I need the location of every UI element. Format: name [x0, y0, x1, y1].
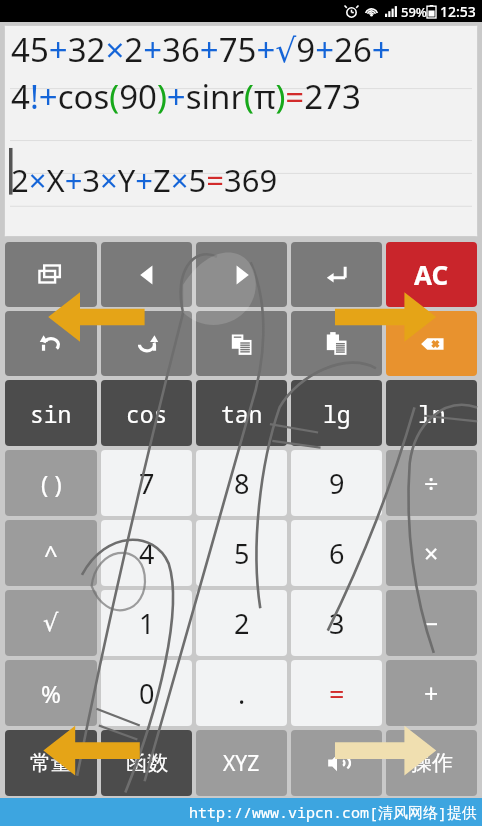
staticText: 常量 — [30, 750, 72, 776]
staticText: 4 — [139, 535, 155, 572]
staticText: AC — [414, 257, 449, 292]
button[interactable]: lg — [291, 380, 382, 446]
button[interactable]: 6 — [291, 520, 382, 586]
button[interactable]: + — [386, 660, 477, 726]
staticText: 4!+cos(90)+sinr(π)=273 — [11, 74, 361, 119]
staticText: 操作 — [411, 750, 453, 776]
staticText: ( ) — [41, 467, 62, 500]
staticText: 9 — [329, 465, 345, 502]
staticText: ÷ — [424, 466, 439, 500]
staticText: tan — [221, 398, 263, 429]
button[interactable]: 2 — [196, 590, 287, 656]
staticText: 7 — [139, 465, 155, 502]
button[interactable]: Sound — [291, 730, 382, 796]
staticText: − — [424, 606, 439, 640]
button[interactable]: 45+32×2+36+75+√9+26+ — [4, 25, 478, 237]
staticText: 6 — [329, 535, 345, 572]
button[interactable]: ^ — [5, 520, 97, 586]
staticText: lg — [323, 398, 351, 429]
staticText: 1 — [139, 605, 155, 642]
button[interactable]: ÷ — [386, 450, 477, 516]
staticText: 12:53 — [440, 2, 476, 21]
button[interactable]: ln — [386, 380, 477, 446]
button[interactable]: = — [291, 660, 382, 726]
button[interactable]: √ — [5, 590, 97, 656]
button[interactable]: Paste — [291, 311, 382, 376]
button[interactable]: 7 — [101, 450, 192, 516]
button[interactable]: 常量 — [5, 730, 97, 796]
staticText: × — [424, 536, 439, 570]
staticText: http://www.vipcn.com[清风网络]提供 — [189, 802, 478, 822]
button[interactable]: Windows — [5, 242, 97, 307]
button[interactable]: % — [5, 660, 97, 726]
button[interactable]: 1 — [101, 590, 192, 656]
staticText: 函数 — [126, 750, 168, 776]
button[interactable]: Move left — [101, 242, 192, 307]
button[interactable]: Undo — [5, 311, 97, 376]
button[interactable]: sin — [5, 380, 97, 446]
button[interactable]: XYZ — [196, 730, 287, 796]
button[interactable]: tan — [196, 380, 287, 446]
staticText: 3 — [329, 605, 345, 642]
button[interactable]: Backspace — [386, 311, 477, 376]
button[interactable]: 0 — [101, 660, 192, 726]
staticText: ln — [418, 398, 446, 429]
staticText: 45+32×2+36+75+√9+26+ — [11, 27, 391, 72]
button[interactable]: 3 — [291, 590, 382, 656]
button[interactable]: ( ) — [5, 450, 97, 516]
staticText: % — [41, 677, 61, 710]
staticText: 0 — [139, 675, 155, 712]
button[interactable]: Copy — [196, 311, 287, 376]
button[interactable]: 函数 — [101, 730, 192, 796]
button[interactable]: Redo — [101, 311, 192, 376]
button[interactable]: × — [386, 520, 477, 586]
staticText: 2×X+3×Y+Z×5=369 — [11, 159, 278, 201]
staticText: . — [238, 675, 246, 712]
button[interactable]: 8 — [196, 450, 287, 516]
button[interactable]: Move right — [196, 242, 287, 307]
staticText: XYZ — [223, 749, 260, 778]
button[interactable]: 4 — [101, 520, 192, 586]
staticText: = — [329, 675, 345, 712]
staticText: √ — [43, 609, 59, 637]
staticText: 59% — [401, 3, 427, 21]
button[interactable]: 5 — [196, 520, 287, 586]
staticText: 8 — [234, 465, 250, 502]
staticText: + — [424, 676, 439, 710]
button[interactable]: cos — [101, 380, 192, 446]
button[interactable]: AC — [386, 242, 477, 307]
button[interactable]: Enter — [291, 242, 382, 307]
staticText: ^ — [44, 537, 58, 570]
button[interactable]: 操作 — [386, 730, 477, 796]
button[interactable]: − — [386, 590, 477, 656]
staticText: 2 — [234, 605, 250, 642]
button[interactable]: . — [196, 660, 287, 726]
staticText: cos — [126, 398, 168, 429]
button[interactable]: 9 — [291, 450, 382, 516]
staticText: 5 — [234, 535, 250, 572]
staticText: sin — [30, 398, 72, 429]
